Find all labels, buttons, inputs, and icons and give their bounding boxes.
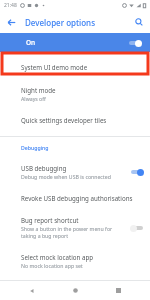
staticText: Developer options	[25, 17, 96, 28]
staticText: Select mock location app	[21, 253, 94, 261]
staticText: Bug report shortcut	[21, 216, 79, 224]
button[interactable]: Bug report shortcut	[0, 209, 150, 246]
button[interactable]: Back	[21, 281, 43, 300]
staticText: Debug mode when USB is connected	[21, 173, 111, 180]
staticText: On	[26, 38, 36, 47]
staticText: System UI demo mode	[21, 63, 88, 71]
staticText: Revoke USB debugging authorisations	[21, 194, 133, 202]
button[interactable]: Search	[128, 11, 150, 33]
button[interactable]: Quick settings developer tiles	[0, 109, 150, 131]
button[interactable]: Night mode	[0, 79, 150, 109]
staticText: Night mode	[21, 86, 56, 94]
button[interactable]: Home	[64, 281, 86, 300]
staticText: 21:48	[4, 2, 17, 9]
button[interactable]: On	[0, 33, 150, 52]
staticText: Debugging	[21, 144, 49, 151]
staticText: USB debugging	[21, 164, 67, 172]
button[interactable]: USB debugging	[0, 157, 150, 187]
staticText: No mock location app set	[21, 262, 83, 269]
staticText: Quick settings developer tiles	[21, 116, 107, 124]
button[interactable]: System UI demo mode	[0, 55, 150, 79]
button[interactable]: Revoke USB debugging authorisations	[0, 187, 150, 209]
button[interactable]: Recent apps	[107, 281, 129, 300]
button[interactable]: Back	[0, 11, 22, 33]
staticText: Always off	[21, 95, 46, 102]
button[interactable]: Select mock location app	[0, 246, 150, 276]
staticText: Show a button in the power menu for taki…	[21, 225, 113, 239]
